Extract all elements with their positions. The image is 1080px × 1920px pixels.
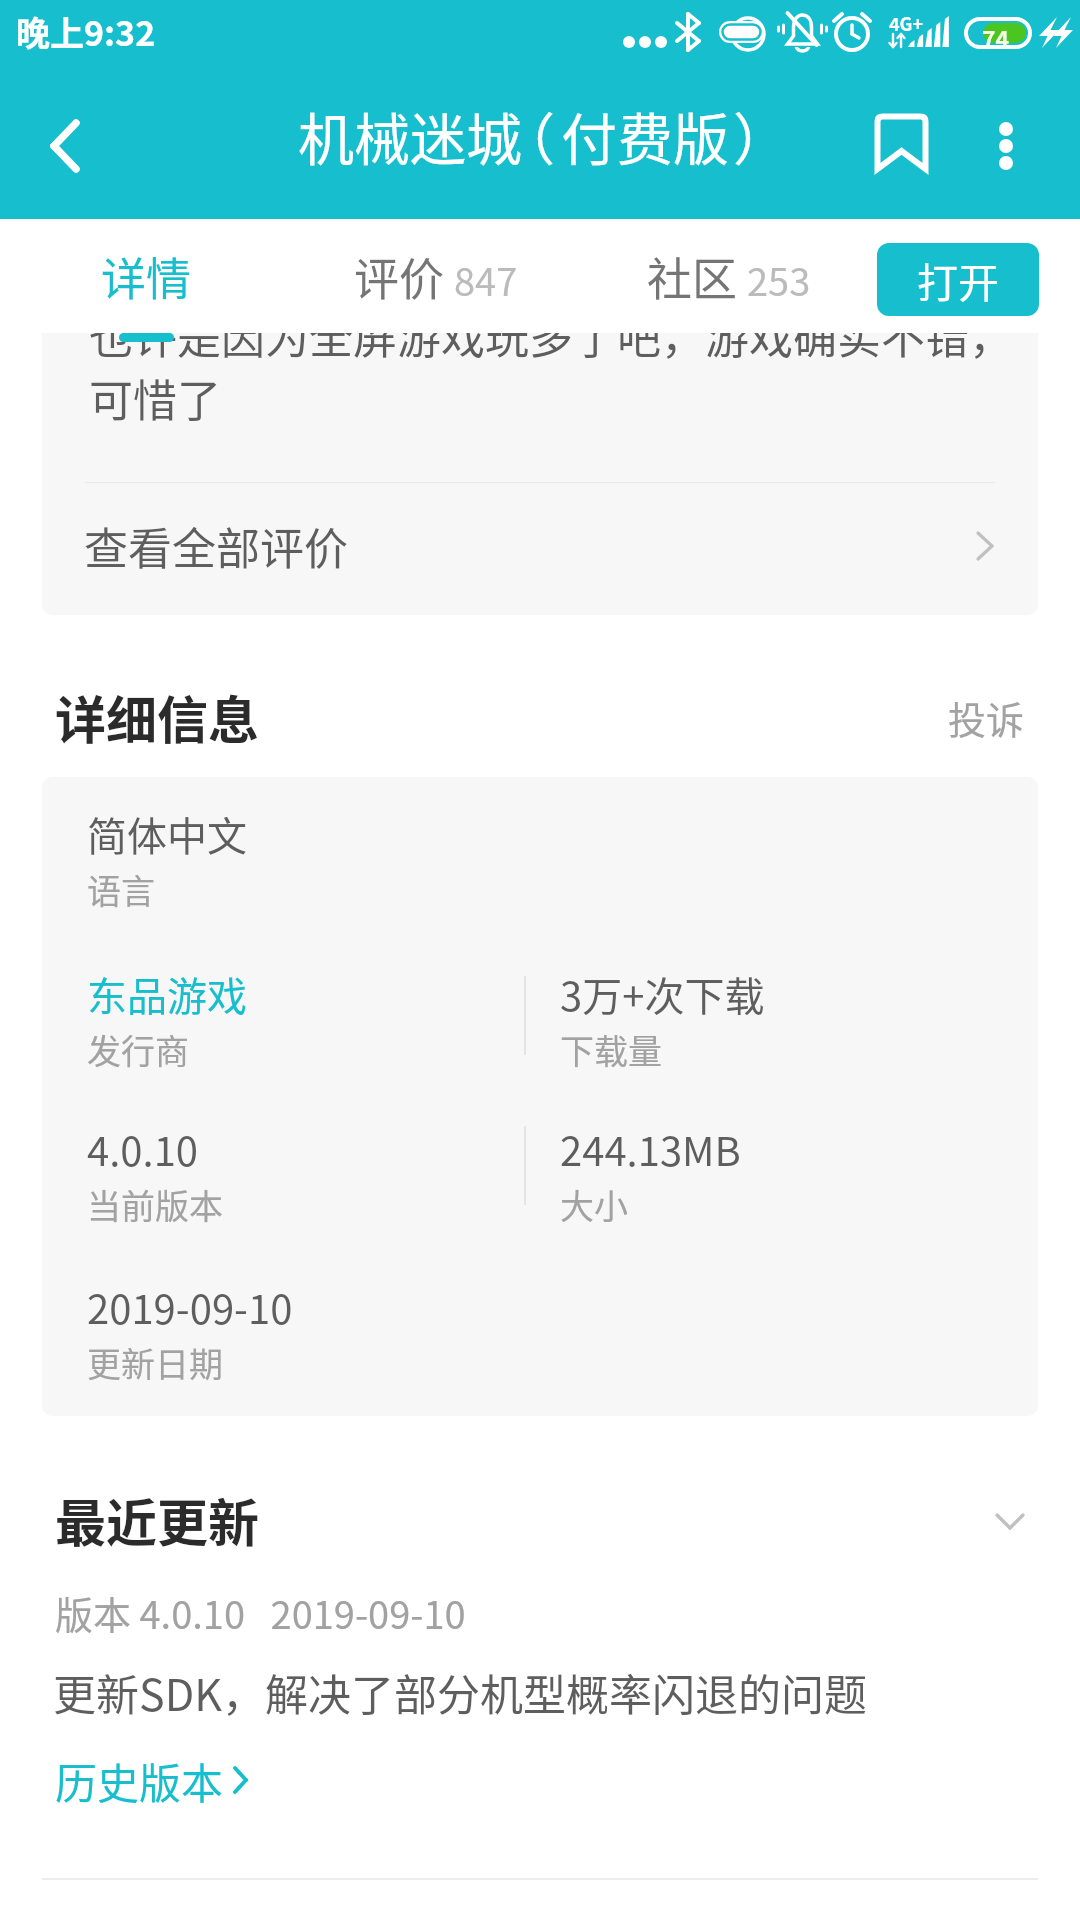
button[interactable]: 社区 xyxy=(604,219,854,333)
staticText: 847 xyxy=(454,252,518,307)
button[interactable]: Back xyxy=(0,72,120,219)
staticText: 语言 xyxy=(87,865,155,914)
button[interactable]: More options xyxy=(951,72,1061,219)
staticText: 评价 xyxy=(354,244,445,309)
staticText: ） xyxy=(733,95,789,176)
staticText: 查看全部评价 xyxy=(84,514,348,578)
staticText: 东品游戏 xyxy=(87,965,247,1023)
staticText: 社区 xyxy=(647,244,738,309)
button[interactable]: Expand xyxy=(970,1489,1050,1569)
staticText: 简体中文 xyxy=(87,805,247,863)
staticText: 版本 4.0.10 2019-09-10 xyxy=(55,1585,466,1640)
staticText: 晚上9:32 xyxy=(16,7,156,56)
staticText: 最近更新 xyxy=(55,1483,260,1557)
staticText: 244.13MB xyxy=(560,1120,741,1178)
button[interactable]: 查看全部评价 xyxy=(42,480,1038,612)
staticText: 机械迷城 xyxy=(298,95,522,176)
button[interactable]: 历史版本 xyxy=(55,1750,258,1810)
staticText: 投诉 xyxy=(948,690,1025,740)
staticText: 更新日期 xyxy=(87,1338,223,1387)
staticText: 74 xyxy=(982,21,1010,54)
staticText: 也许是因为全屏游戏玩多了吧，游戏确实不错， 可惜了 xyxy=(89,303,1013,430)
staticText: 3万+次下载 xyxy=(560,965,765,1023)
button[interactable]: 投诉 xyxy=(930,690,1025,740)
staticText: 打开 xyxy=(917,250,999,309)
staticText: 详细信息 xyxy=(55,680,260,754)
staticText: 大小 xyxy=(560,1180,628,1229)
staticText: 当前版本 xyxy=(87,1180,223,1229)
staticText: 下载量 xyxy=(560,1025,662,1074)
staticText: 更新SDK，解决了部分机型概率闪退的问题 xyxy=(53,1661,867,1723)
staticText: 详情 xyxy=(101,244,192,309)
button[interactable]: 详情 xyxy=(56,219,236,333)
button[interactable]: 打开 xyxy=(877,243,1039,316)
staticText: 历史版本 xyxy=(55,1750,224,1810)
staticText: 4G+ xyxy=(889,10,924,36)
staticText: 4.0.10 xyxy=(87,1120,199,1178)
staticText: 253 xyxy=(747,252,811,307)
staticText: 付费版 xyxy=(561,95,729,176)
staticText: （ xyxy=(499,95,555,176)
button[interactable]: 评价 xyxy=(311,219,561,333)
staticText: 2019-09-10 xyxy=(87,1278,293,1336)
staticText: 发行商 xyxy=(87,1025,189,1074)
button[interactable]: Bookmark xyxy=(845,72,955,219)
